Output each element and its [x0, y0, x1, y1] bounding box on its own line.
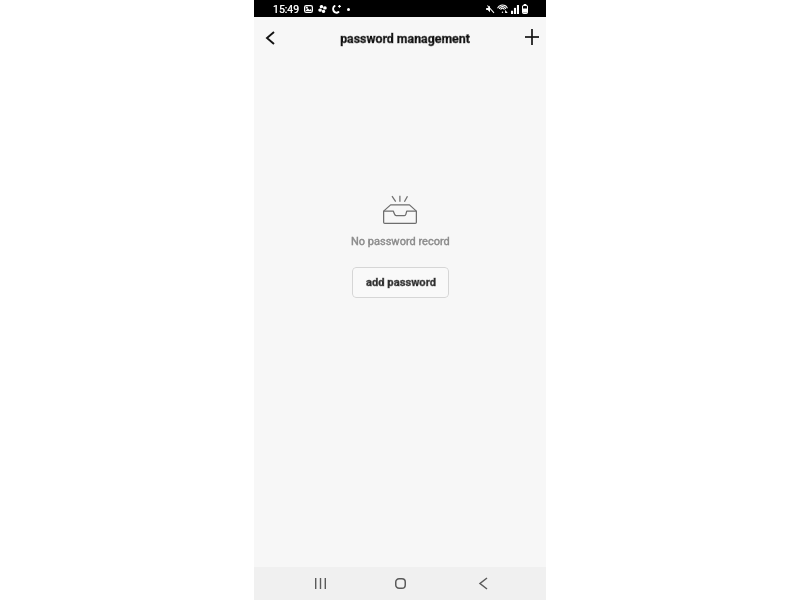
- staticText: add password: [366, 276, 436, 289]
- button[interactable]: Add password: [518, 23, 546, 51]
- button[interactable]: add password: [352, 267, 449, 298]
- staticText: No password record: [351, 235, 450, 248]
- button[interactable]: Home: [376, 567, 424, 600]
- button[interactable]: Back: [459, 567, 507, 600]
- button[interactable]: Back: [257, 25, 283, 51]
- staticText: add password: [366, 276, 436, 289]
- staticText: 15:49: [273, 3, 300, 15]
- staticText: password management: [340, 32, 470, 46]
- button[interactable]: Recent apps: [296, 567, 344, 600]
- staticText: No password record: [351, 235, 450, 248]
- staticText: password management: [340, 32, 470, 46]
